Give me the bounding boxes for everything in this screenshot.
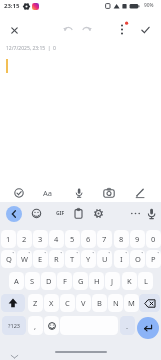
staticText: 3: [38, 234, 43, 244]
button[interactable]: [6, 206, 22, 222]
button[interactable]: [141, 26, 150, 34]
button[interactable]: A: [9, 272, 24, 290]
staticText: GIF: [56, 210, 65, 217]
button[interactable]: T: [65, 250, 80, 268]
button[interactable]: E: [33, 250, 48, 268]
staticText: T: [70, 254, 75, 264]
staticText: 23:15: [4, 2, 20, 10]
button[interactable]: B: [92, 294, 107, 312]
button[interactable]: 1: [1, 230, 16, 248]
button[interactable]: [10, 354, 19, 360]
button[interactable]: [44, 316, 59, 335]
button[interactable]: [139, 294, 160, 312]
button[interactable]: Z: [28, 294, 43, 312]
staticText: .: [126, 321, 129, 331]
button[interactable]: [74, 188, 84, 198]
button[interactable]: P: [146, 250, 161, 268]
staticText: ,: [34, 321, 37, 331]
button[interactable]: W: [17, 250, 32, 268]
button[interactable]: V: [76, 294, 91, 312]
staticText: 12/7/2025, 23:15 | 0: [6, 45, 56, 52]
button[interactable]: [118, 21, 130, 37]
button[interactable]: [137, 317, 159, 339]
staticText: Q: [6, 254, 12, 264]
button[interactable]: Q: [1, 250, 16, 268]
staticText: Y: [86, 254, 91, 264]
button[interactable]: [81, 25, 92, 35]
button[interactable]: M: [124, 294, 139, 312]
staticText: 7: [102, 234, 107, 244]
button[interactable]: L: [138, 272, 153, 290]
button[interactable]: Aa: [41, 187, 54, 198]
button[interactable]: [93, 208, 104, 219]
staticText: 5: [70, 234, 75, 244]
button[interactable]: 8: [114, 230, 129, 248]
staticText: Z: [33, 298, 38, 308]
button[interactable]: 6: [81, 230, 96, 248]
staticText: L: [144, 276, 148, 286]
button[interactable]: 2: [17, 230, 32, 248]
staticText: 6: [86, 234, 91, 244]
staticText: R: [54, 254, 59, 264]
staticText: C: [65, 298, 70, 308]
button[interactable]: N: [108, 294, 123, 312]
staticText: I: [120, 254, 123, 264]
staticText: 2: [22, 234, 27, 244]
staticText: O: [135, 254, 141, 264]
button[interactable]: 0: [146, 230, 161, 248]
staticText: 8: [119, 234, 124, 244]
button[interactable]: .: [120, 316, 135, 335]
button[interactable]: [135, 188, 145, 198]
staticText: Aa: [43, 188, 52, 198]
button[interactable]: [146, 208, 157, 220]
button[interactable]: G: [73, 272, 88, 290]
button[interactable]: X: [44, 294, 59, 312]
button[interactable]: 3: [33, 230, 48, 248]
staticText: U: [102, 254, 108, 264]
button[interactable]: [14, 188, 24, 198]
button[interactable]: 9: [130, 230, 145, 248]
staticText: N: [113, 298, 119, 308]
button[interactable]: [73, 208, 84, 219]
button[interactable]: GIF: [54, 208, 67, 219]
button[interactable]: J: [105, 272, 120, 290]
staticText: 0: [151, 234, 156, 244]
button[interactable]: 7: [97, 230, 112, 248]
staticText: D: [46, 276, 52, 286]
button[interactable]: 5: [65, 230, 80, 248]
button[interactable]: C: [60, 294, 75, 312]
button[interactable]: H: [89, 272, 104, 290]
staticText: F: [63, 276, 67, 286]
button[interactable]: [11, 27, 18, 34]
button[interactable]: [103, 188, 115, 198]
staticText: P: [151, 254, 156, 264]
button[interactable]: ?123: [2, 316, 26, 335]
button[interactable]: I: [114, 250, 129, 268]
button[interactable]: [63, 25, 74, 35]
button[interactable]: [130, 210, 141, 217]
staticText: M: [128, 298, 135, 308]
button[interactable]: [23, 3, 30, 10]
button[interactable]: F: [57, 272, 72, 290]
button[interactable]: ,: [28, 316, 43, 335]
button[interactable]: [1, 294, 25, 312]
staticText: G: [78, 276, 84, 286]
staticText: A: [14, 276, 19, 286]
button[interactable]: Y: [81, 250, 96, 268]
button[interactable]: R: [49, 250, 64, 268]
button[interactable]: K: [122, 272, 137, 290]
button[interactable]: [105, 3, 142, 10]
staticText: J: [111, 276, 114, 286]
staticText: K: [127, 276, 132, 286]
staticText: 90%: [144, 2, 154, 9]
staticText: H: [94, 276, 100, 286]
button[interactable]: D: [41, 272, 56, 290]
button[interactable]: U: [97, 250, 112, 268]
staticText: ?123: [8, 322, 21, 330]
staticText: B: [97, 298, 102, 308]
button[interactable]: 4: [49, 230, 64, 248]
button[interactable]: S: [25, 272, 40, 290]
button[interactable]: [31, 208, 42, 219]
button[interactable]: O: [130, 250, 145, 268]
